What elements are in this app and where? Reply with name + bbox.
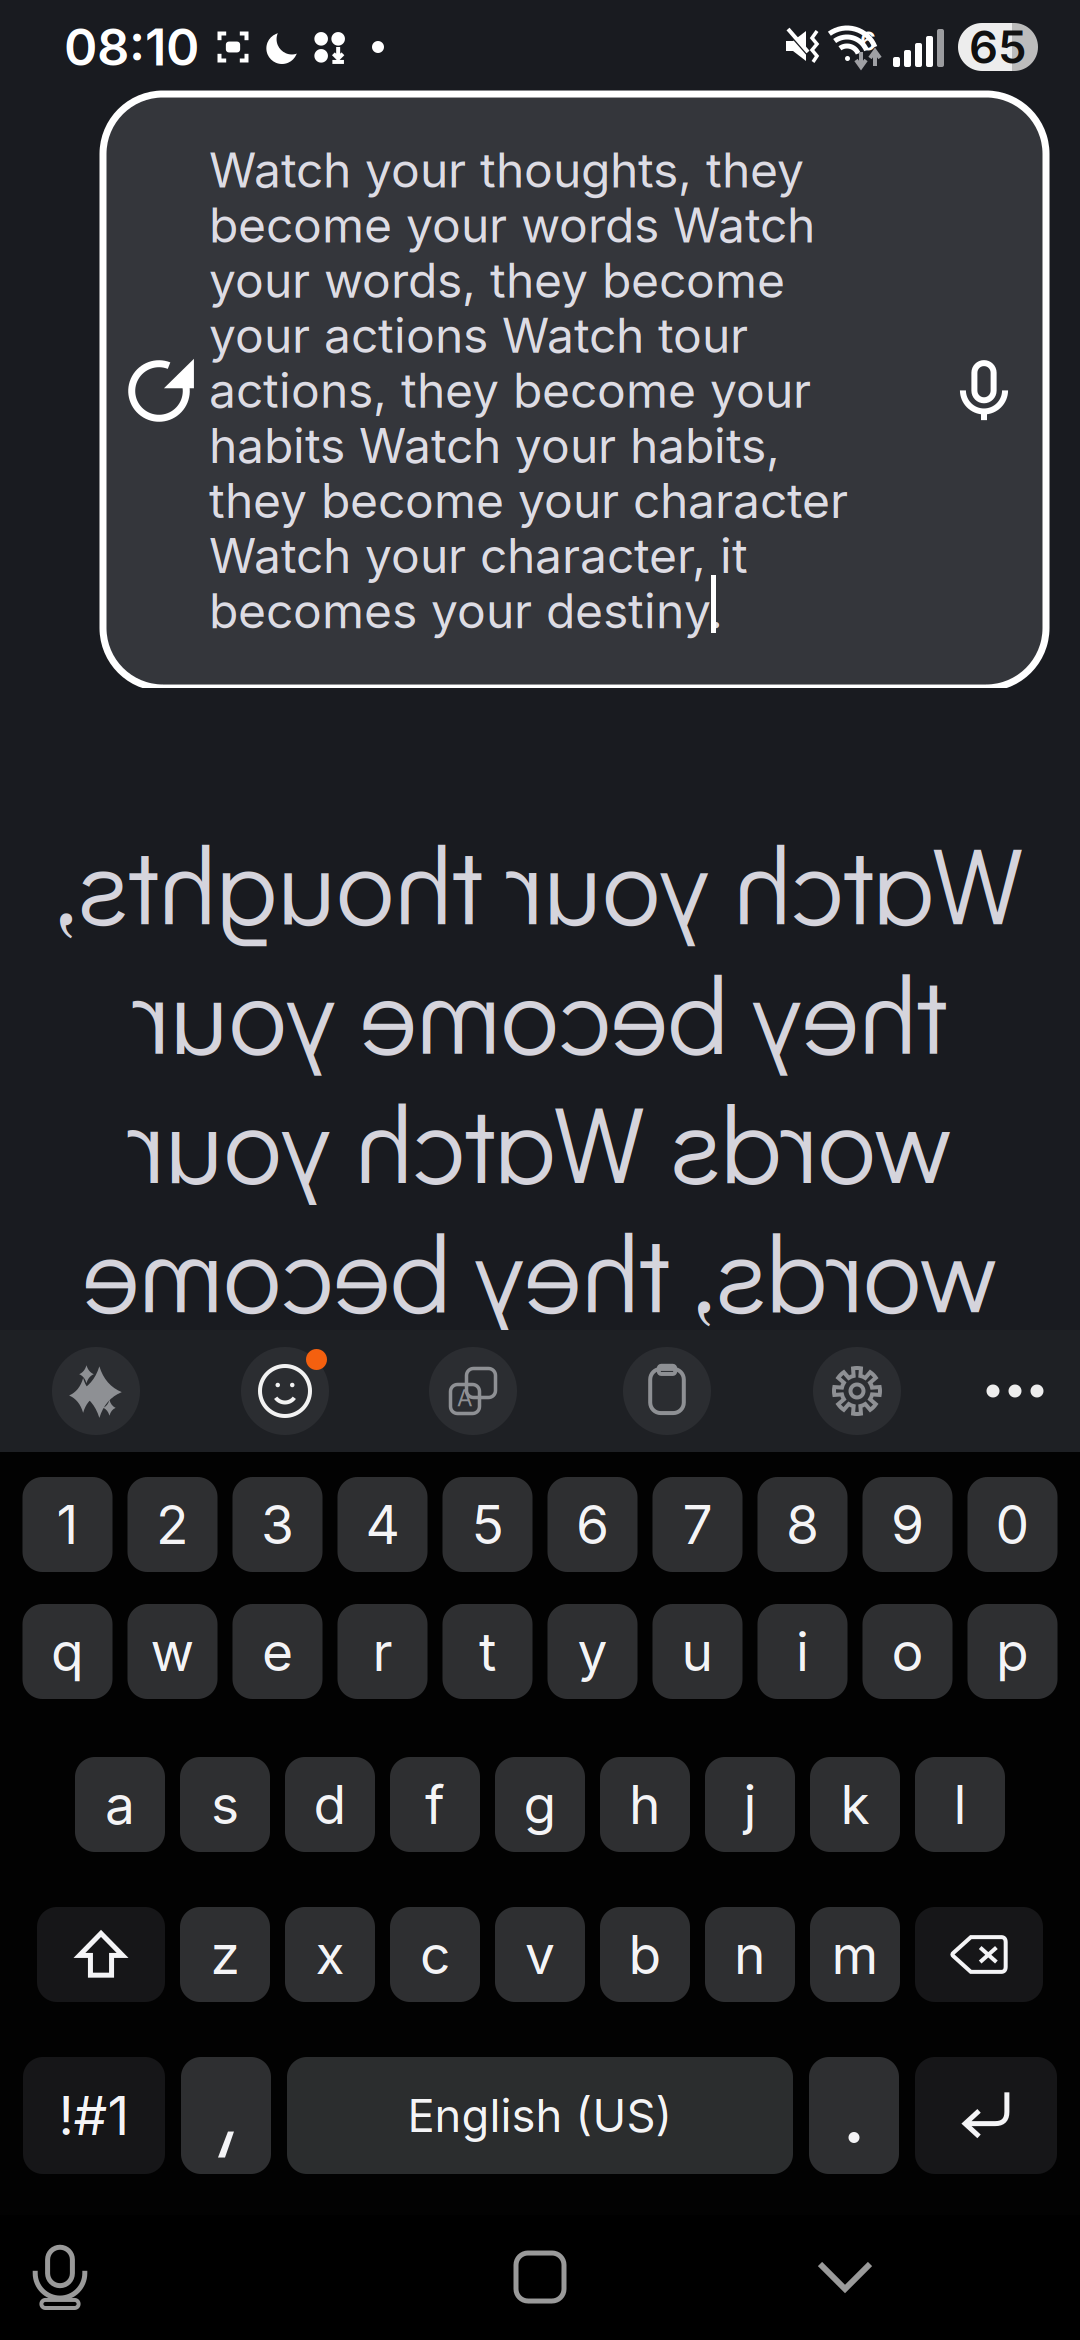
staticText: 6 [576, 1492, 609, 1557]
staticText: n [734, 1922, 766, 1987]
button[interactable]: English (US) [287, 2057, 793, 2174]
staticText: x [315, 1922, 344, 1987]
button[interactable]: 9 [862, 1477, 952, 1572]
button[interactable]: d [285, 1757, 375, 1852]
staticText: 1 [56, 1492, 78, 1557]
staticText: o [891, 1619, 923, 1684]
button[interactable]: p [967, 1604, 1057, 1699]
button[interactable]: Reset [109, 335, 209, 447]
button[interactable] [915, 1907, 1043, 2002]
button[interactable] [181, 2057, 271, 2174]
button[interactable]: s [180, 1757, 270, 1852]
button[interactable]: 6 [547, 1477, 637, 1572]
staticText: i [796, 1619, 809, 1684]
button[interactable]: !#1 [23, 2057, 165, 2174]
button[interactable]: m [810, 1907, 900, 2002]
button[interactable]: 7 [652, 1477, 742, 1572]
staticText: j [743, 1772, 756, 1837]
button[interactable]: r [337, 1604, 427, 1699]
staticText: h [629, 1772, 661, 1837]
staticText: r [372, 1619, 392, 1684]
staticText: k [840, 1772, 869, 1837]
button[interactable]: x [285, 1907, 375, 2002]
button[interactable]: 3 [232, 1477, 322, 1572]
button[interactable]: e [232, 1604, 322, 1699]
button[interactable]: Settings [813, 1347, 901, 1435]
staticText: 65 [969, 20, 1027, 74]
button[interactable]: j [705, 1757, 795, 1852]
button[interactable]: f [390, 1757, 480, 1852]
button[interactable]: 8 [757, 1477, 847, 1572]
button[interactable]: i [757, 1604, 847, 1699]
staticText: q [51, 1619, 84, 1684]
staticText: l [953, 1772, 966, 1837]
staticText: Watch your thoughts, they become your wo… [209, 141, 848, 640]
staticText: m [831, 1922, 878, 1987]
staticText: 7 [682, 1492, 712, 1557]
staticText: y [577, 1619, 607, 1684]
staticText: b [628, 1922, 661, 1987]
button[interactable]: h [600, 1757, 690, 1852]
staticText: 08:10 [64, 16, 199, 78]
staticText: 8 [786, 1492, 819, 1557]
button[interactable]: c [390, 1907, 480, 2002]
button[interactable] [809, 2057, 899, 2174]
staticText: 0 [995, 1492, 1029, 1557]
button[interactable]: 0 [967, 1477, 1057, 1572]
staticText: w [150, 1619, 194, 1684]
staticText: c [420, 1922, 450, 1987]
button[interactable]: l [915, 1757, 1005, 1852]
staticText: Watch your thoughts, they become your wo… [46, 810, 1034, 2340]
button[interactable]: Home [492, 2227, 588, 2327]
button[interactable]: Clipboard [623, 1347, 711, 1435]
button[interactable]: o [862, 1604, 952, 1699]
staticText: d [313, 1772, 346, 1837]
button[interactable]: a [75, 1757, 165, 1852]
staticText: g [523, 1772, 556, 1837]
staticText: f [425, 1772, 445, 1837]
button[interactable]: 4 [337, 1477, 427, 1572]
staticText: a [105, 1772, 135, 1837]
staticText: e [262, 1619, 293, 1684]
staticText: !#1 [58, 2083, 129, 2148]
button[interactable]: b [600, 1907, 690, 2002]
button[interactable] [915, 2057, 1057, 2174]
staticText: u [681, 1619, 713, 1684]
staticText: 2 [156, 1492, 189, 1557]
staticText: p [996, 1619, 1029, 1684]
button[interactable]: Voice input [936, 335, 1032, 447]
staticText: 6 [860, 26, 876, 57]
button[interactable]: u [652, 1604, 742, 1699]
button[interactable]: v [495, 1907, 585, 2002]
staticText: English (US) [407, 2088, 672, 2143]
button[interactable]: q [22, 1604, 112, 1699]
staticText: 3 [261, 1492, 294, 1557]
staticText: A [457, 1384, 472, 1412]
button[interactable] [37, 1907, 165, 2002]
button[interactable]: Emoji [241, 1347, 329, 1435]
button[interactable]: 1 [22, 1477, 112, 1572]
button[interactable]: AI assist [52, 1347, 140, 1435]
staticText: 9 [891, 1492, 924, 1557]
button[interactable]: z [180, 1907, 270, 2002]
button[interactable]: k [810, 1757, 900, 1852]
button[interactable]: y [547, 1604, 637, 1699]
staticText: z [210, 1922, 239, 1987]
staticText: t [479, 1619, 496, 1684]
staticText: 5 [471, 1492, 503, 1557]
button[interactable]: 5 [442, 1477, 532, 1572]
button[interactable]: More options [971, 1347, 1059, 1435]
button[interactable]: Translate [429, 1347, 517, 1435]
staticText: v [525, 1922, 555, 1987]
button[interactable]: n [705, 1907, 795, 2002]
button[interactable]: g [495, 1757, 585, 1852]
button[interactable]: Hide keyboard [797, 2227, 893, 2327]
staticText: 4 [365, 1492, 399, 1557]
button[interactable]: w [127, 1604, 217, 1699]
button[interactable]: Voice input [12, 2227, 108, 2327]
button[interactable]: 2 [127, 1477, 217, 1572]
staticText: s [211, 1772, 239, 1837]
button[interactable]: t [442, 1604, 532, 1699]
